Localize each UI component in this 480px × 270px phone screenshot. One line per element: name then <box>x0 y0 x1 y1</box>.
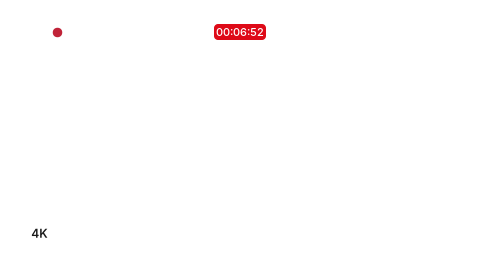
staticText: 60 FPS <box>416 229 453 243</box>
staticText: HD <box>52 226 70 241</box>
button[interactable]: 4K <box>29 226 49 240</box>
staticText: 00:06:52 <box>216 25 264 39</box>
button[interactable]: REC <box>26 25 62 40</box>
button[interactable]: HD <box>51 226 70 240</box>
button[interactable]: Battery <box>427 29 447 37</box>
staticText: 4K <box>31 226 47 241</box>
staticText: REC <box>26 25 50 40</box>
